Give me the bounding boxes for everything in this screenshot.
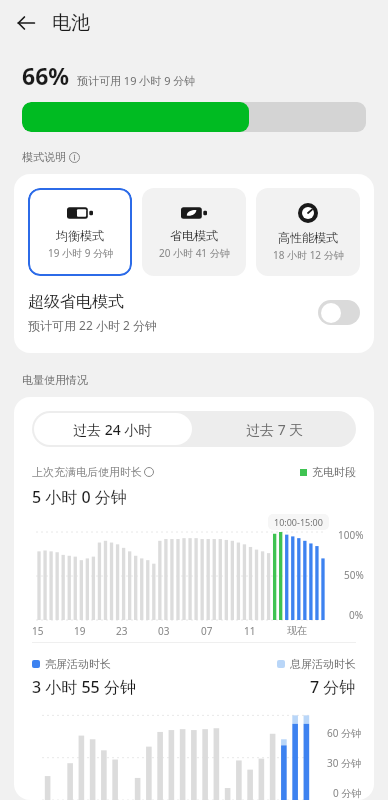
- button[interactable]: 高性能模式: [256, 188, 360, 276]
- button[interactable]: 超级省电模式: [28, 292, 360, 333]
- staticText: 电量使用情况: [22, 373, 88, 387]
- button[interactable]: 过去 7 天: [194, 411, 356, 447]
- staticText: 过去 24 小时: [73, 420, 153, 439]
- staticText: 18 小时 12 分钟: [273, 248, 344, 262]
- staticText: 3 小时 55 分钟: [32, 676, 136, 698]
- staticText: 过去 7 天: [246, 420, 304, 439]
- staticText: 亮屏活动时长: [45, 657, 111, 671]
- staticText: 19: [74, 624, 86, 638]
- staticText: 03: [158, 624, 170, 638]
- button[interactable]: 省电模式: [142, 188, 246, 276]
- staticText: 均衡模式: [56, 228, 104, 243]
- staticText: 0 分钟: [333, 786, 362, 800]
- staticText: 高性能模式: [278, 230, 338, 245]
- staticText: 5 小时 0 分钟: [32, 486, 127, 508]
- staticText: 19 小时 9 分钟: [48, 246, 113, 260]
- staticText: 息屏活动时长: [290, 657, 356, 671]
- staticText: 07: [201, 624, 213, 638]
- staticText: 66%: [22, 60, 70, 91]
- staticText: 30 分钟: [327, 756, 362, 770]
- staticText: 现在: [287, 624, 307, 637]
- button[interactable]: Back: [8, 5, 44, 41]
- staticText: 20 小时 41 分钟: [159, 246, 230, 260]
- staticText: 模式说明: [22, 150, 66, 164]
- button[interactable]: 均衡模式: [28, 188, 132, 276]
- staticText: 15: [32, 624, 44, 638]
- staticText: 充电时段: [312, 465, 356, 479]
- staticText: 0%: [349, 608, 364, 622]
- staticText: 预计可用 19 小时 9 分钟: [77, 73, 196, 88]
- staticText: 60 分钟: [327, 726, 362, 740]
- staticText: 10:00-15:00: [274, 516, 323, 528]
- staticText: 预计可用 22 小时 2 分钟: [28, 317, 158, 333]
- staticText: 50%: [344, 568, 364, 582]
- staticText: 100%: [338, 528, 364, 542]
- button[interactable]: 过去 24 小时: [34, 413, 192, 445]
- other: 超级省电模式开关: [318, 300, 360, 325]
- staticText: 超级省电模式: [28, 292, 124, 312]
- staticText: 23: [116, 624, 128, 638]
- staticText: 11: [244, 624, 256, 638]
- staticText: 电池: [52, 11, 90, 35]
- staticText: 省电模式: [170, 228, 218, 243]
- staticText: 7 分钟: [310, 676, 356, 698]
- staticText: 上次充满电后使用时长: [32, 465, 142, 479]
